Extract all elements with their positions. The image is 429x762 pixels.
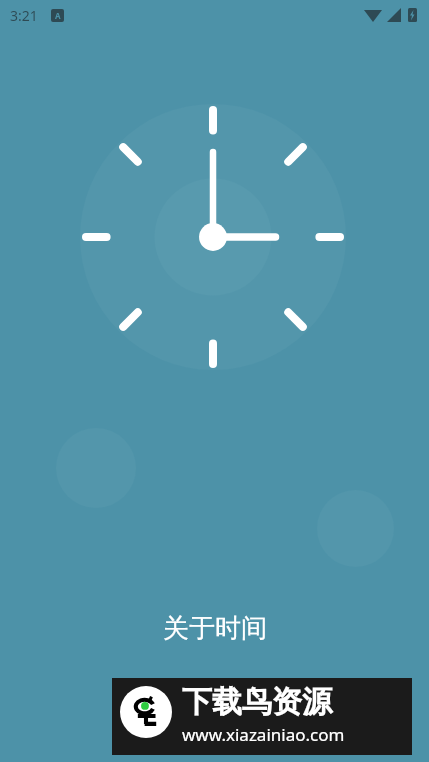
- staticText: A: [55, 10, 61, 21]
- staticText: www.xiazainiao.com: [182, 723, 345, 746]
- staticText: 3:21: [10, 6, 38, 25]
- staticText: 关于时间: [163, 612, 267, 645]
- button[interactable]: Clock: [80, 104, 346, 370]
- staticText: 下载鸟资源: [182, 683, 332, 721]
- button[interactable]: 关于时间: [0, 608, 429, 648]
